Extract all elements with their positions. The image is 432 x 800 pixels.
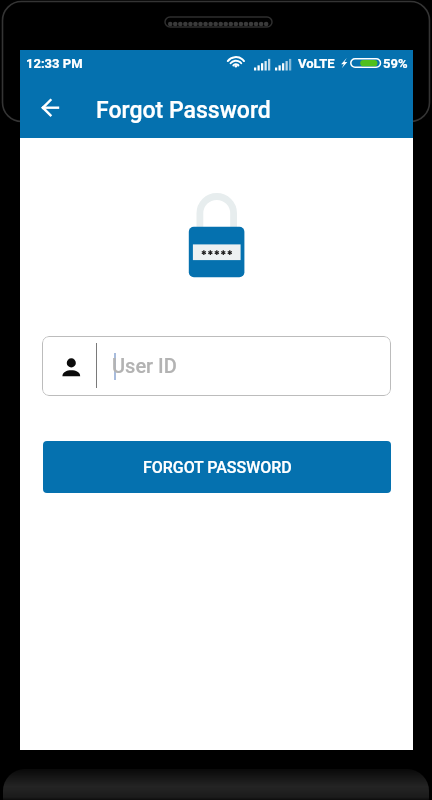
- staticText: VoLTE: [298, 56, 335, 71]
- button[interactable]: User ID: [42, 336, 391, 396]
- button[interactable]: Back: [30, 89, 74, 133]
- staticText: 12:33 PM: [26, 56, 83, 71]
- staticText: Forgot Password: [96, 97, 271, 124]
- staticText: 59%: [383, 56, 408, 71]
- staticText: User ID: [112, 354, 177, 377]
- staticText: FORGOT PASSWORD: [143, 458, 292, 477]
- button[interactable]: FORGOT PASSWORD: [43, 441, 391, 493]
